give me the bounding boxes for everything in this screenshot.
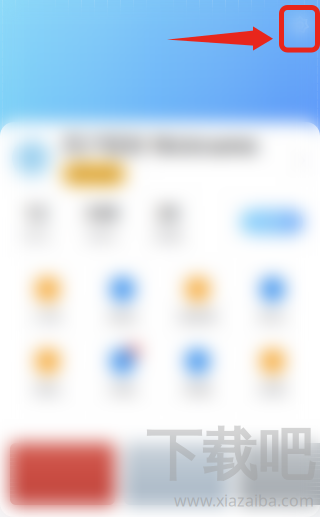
button[interactable] [238, 443, 320, 505]
staticText: 订单 [34, 309, 60, 325]
staticText: 下载吧 [146, 421, 314, 490]
button[interactable]: 348 [69, 200, 135, 244]
button[interactable]: 设置 [235, 342, 310, 404]
staticText: 优惠券 [178, 309, 217, 325]
button[interactable]: 用户昵称 Nickname [0, 122, 320, 194]
button[interactable]: 消息 [85, 342, 160, 404]
button[interactable]: 去签到 [241, 210, 303, 233]
staticText: VIP 会员 [69, 165, 119, 183]
staticText: 关注 [23, 228, 49, 244]
button[interactable]: 客服 [160, 342, 235, 404]
staticText: 12 [25, 200, 47, 225]
staticText: 积分 [259, 309, 285, 325]
button[interactable]: 订单 [10, 270, 85, 332]
staticText: 钱包 [109, 309, 135, 325]
button[interactable] [10, 443, 115, 505]
staticText: 消息 [109, 381, 135, 397]
button[interactable]: 26 [135, 200, 201, 244]
staticText: 粉丝 [89, 228, 115, 244]
staticText: 地址 [34, 381, 60, 397]
button[interactable] [124, 443, 229, 505]
staticText: 去签到 [249, 213, 294, 231]
button[interactable]: 12 [3, 200, 69, 244]
staticText: 26 [157, 200, 179, 225]
button[interactable]: 优惠券 [160, 270, 235, 332]
staticText: 设置 [259, 381, 285, 397]
staticText: 348 [85, 200, 118, 225]
button[interactable]: Settings [289, 14, 311, 36]
button[interactable]: 积分 [235, 270, 310, 332]
button[interactable]: 钱包 [85, 270, 160, 332]
staticText: www.xiazaiba.com [174, 490, 314, 511]
staticText: 用户昵称 Nickname [62, 130, 257, 159]
button[interactable]: 地址 [10, 342, 85, 404]
staticText: 收藏 [155, 228, 181, 244]
staticText: 客服 [184, 381, 210, 397]
